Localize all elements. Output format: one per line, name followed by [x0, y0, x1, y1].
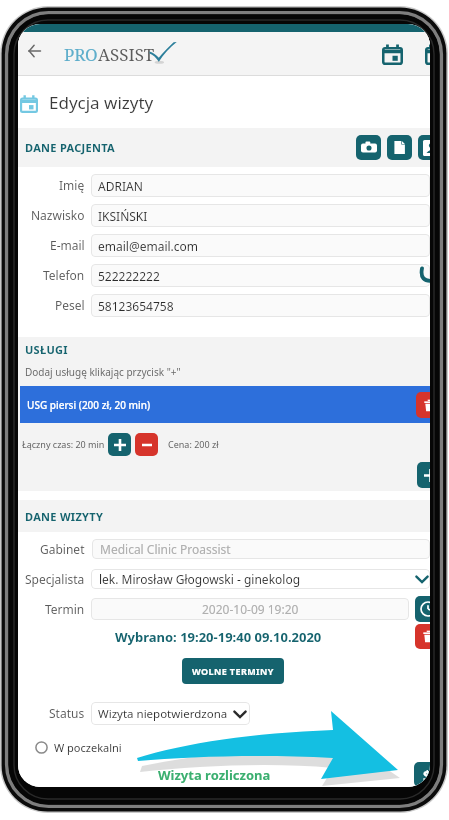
button[interactable]: ADRIAN [91, 174, 430, 197]
button[interactable]: lek. Mirosław Głogowski - ginekolog [91, 569, 430, 589]
button[interactable]: Documents [387, 135, 412, 160]
button[interactable]: Wizyta niepotwierdzona [91, 702, 250, 725]
button[interactable]: 522222222 [91, 264, 430, 287]
staticText: Specjalista [25, 571, 85, 587]
staticText: ASSIST [98, 43, 155, 66]
staticText: Cena: 200 zł [168, 438, 219, 450]
staticText: $ [423, 765, 430, 785]
button[interactable]: Increase time [108, 433, 131, 456]
staticText: ADRIAN [98, 178, 143, 194]
button[interactable]: IKSIŃSKI [91, 204, 430, 227]
staticText: PRO [64, 43, 98, 66]
button[interactable]: Calendar [376, 38, 408, 70]
button[interactable]: Notes [419, 38, 430, 70]
staticText: Łączny czas: 20 min [22, 438, 105, 450]
staticText: DANE PACJENTA [25, 140, 115, 155]
staticText: 58123654758 [98, 298, 174, 314]
button[interactable]: email@email.com [91, 234, 430, 257]
button[interactable]: Medical Clinic Proassist [92, 539, 430, 559]
button[interactable]: Decrease time [135, 433, 158, 456]
staticText: USŁUGI [25, 342, 68, 357]
staticText: Wizyta niepotwierdzona [98, 706, 228, 722]
staticText: E-mail [50, 237, 85, 253]
staticText: Medical Clinic Proassist [100, 541, 231, 557]
button[interactable]: Call patient [415, 264, 430, 286]
staticText: 522222222 [98, 268, 160, 284]
staticText: Pesel [55, 297, 85, 313]
button[interactable]: Settle payment [414, 762, 430, 787]
staticText: DANE WIZYTY [25, 509, 104, 524]
staticText: Nazwisko [31, 207, 85, 223]
staticText: Gabinet [40, 541, 85, 557]
staticText: lek. Mirosław Głogowski - ginekolog [99, 571, 301, 587]
button[interactable]: W poczekalni [35, 740, 122, 755]
staticText: Wybrano: 19:20-19:40 09.10.2020 [115, 628, 322, 646]
staticText: Dodaj usługę klikając przycisk "+" [25, 365, 181, 379]
staticText: Imię [59, 177, 85, 193]
staticText: Status [49, 705, 85, 721]
button[interactable]: Add service [417, 462, 430, 488]
staticText: Wizyta rozliczona [158, 766, 271, 784]
staticText: USG piersi (200 zł, 20 min) [27, 398, 151, 412]
staticText: email@email.com [98, 238, 199, 254]
button[interactable]: Back [18, 38, 51, 71]
staticText: Edycja wizyty [49, 91, 154, 114]
staticText: WOLNE TERMINY [192, 665, 274, 677]
button[interactable]: WOLNE TERMINY [182, 658, 284, 684]
button[interactable]: Delete service [416, 392, 430, 418]
staticText: W poczekalni [54, 740, 122, 755]
button[interactable]: Pick date and time [415, 596, 430, 622]
button[interactable]: 58123654758 [91, 294, 430, 317]
staticText: 2020-10-09 19:20 [202, 601, 299, 617]
button[interactable]: Take photo [356, 135, 381, 160]
button[interactable]: Remove appointment [415, 624, 430, 649]
button[interactable]: 2020-10-09 19:20 [91, 598, 409, 620]
button[interactable]: Patient card [418, 135, 430, 160]
staticText: IKSIŃSKI [98, 208, 148, 224]
staticText: Telefon [43, 267, 85, 283]
staticText: Termin [45, 601, 85, 617]
button[interactable]: USG piersi (200 zł, 20 min) [20, 386, 430, 423]
